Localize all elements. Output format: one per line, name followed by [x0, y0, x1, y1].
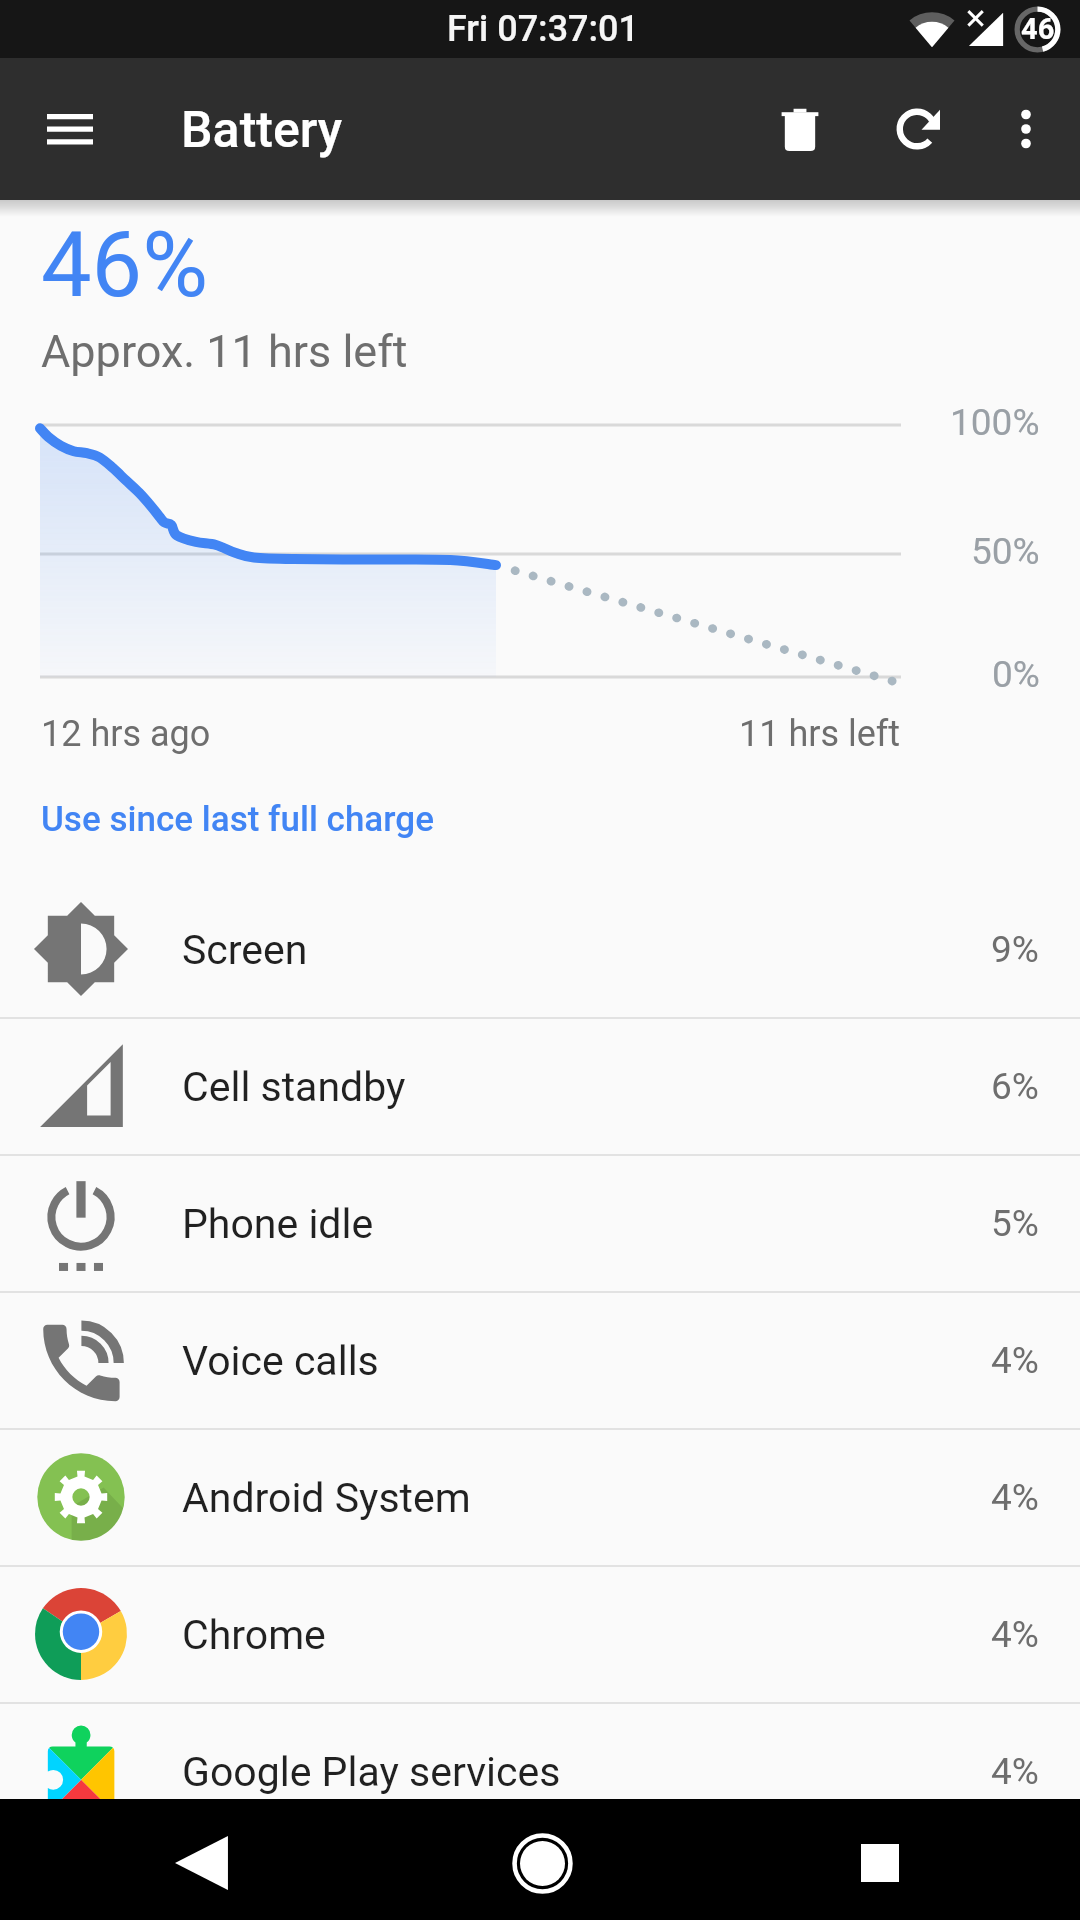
button[interactable]: More options — [978, 81, 1074, 177]
staticText: 5% — [991, 1202, 1039, 1245]
staticText: Cell standby — [182, 1063, 406, 1111]
staticText: 50% — [971, 530, 1040, 573]
staticText: 4% — [991, 1339, 1039, 1382]
button[interactable]: Recent apps — [820, 1803, 940, 1920]
button[interactable]: Chrome — [0, 1565, 1080, 1702]
staticText: Voice calls — [182, 1337, 379, 1385]
staticText: 12 hrs ago — [41, 713, 211, 755]
button[interactable]: Back — [142, 1803, 262, 1920]
staticText: 4% — [991, 1476, 1039, 1519]
staticText: 4% — [991, 1750, 1039, 1793]
staticText: 9% — [991, 928, 1039, 971]
button[interactable]: Use since last full charge — [0, 786, 1080, 852]
button[interactable]: Android System — [0, 1428, 1080, 1565]
staticText: Fri 07:37:01 — [447, 8, 640, 50]
button[interactable]: Delete — [752, 81, 848, 177]
staticText: Use since last full charge — [41, 799, 434, 840]
staticText: Screen — [182, 926, 308, 974]
staticText: Approx. 11 hrs left — [41, 325, 408, 378]
button[interactable]: Google Play services — [0, 1702, 1080, 1839]
staticText: Chrome — [182, 1611, 326, 1659]
staticText: 11 hrs left — [739, 713, 901, 755]
staticText: Google Play services — [182, 1748, 561, 1796]
staticText: Phone idle — [182, 1200, 374, 1248]
staticText: Android System — [182, 1474, 471, 1522]
staticText: 46% — [41, 213, 209, 318]
staticText: 100% — [950, 401, 1040, 444]
button[interactable]: Screen — [0, 880, 1080, 1017]
button[interactable]: Refresh — [872, 81, 968, 177]
button[interactable]: Home — [482, 1803, 602, 1920]
staticText: Battery — [181, 101, 343, 160]
button[interactable]: Phone idle — [0, 1154, 1080, 1291]
staticText: 6% — [991, 1065, 1039, 1108]
staticText: 4% — [991, 1613, 1039, 1656]
staticText: 0% — [992, 653, 1040, 696]
button[interactable]: Voice calls — [0, 1291, 1080, 1428]
button[interactable]: Cell standby — [0, 1017, 1080, 1154]
button[interactable]: Navigation menu — [22, 81, 118, 177]
staticText: 46 — [1021, 12, 1055, 46]
